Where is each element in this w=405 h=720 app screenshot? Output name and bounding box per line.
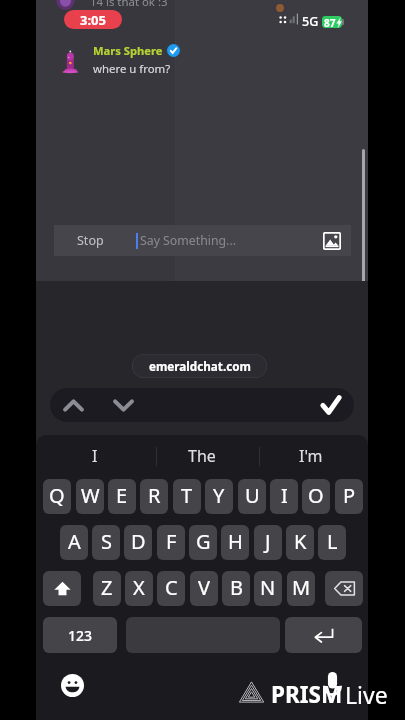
staticText: 14 is that ok :3 [90, 0, 168, 10]
button[interactable]: V [190, 571, 218, 606]
button[interactable]: Emoji [61, 674, 84, 697]
button[interactable]: C [157, 571, 185, 606]
staticText: I [92, 445, 98, 467]
staticText: E [116, 482, 128, 509]
staticText: 3:05 [80, 11, 106, 29]
button[interactable]: R [140, 479, 168, 514]
button[interactable]: Q [43, 479, 71, 514]
button[interactable]: H [221, 525, 249, 560]
button[interactable]: Backspace [325, 571, 363, 606]
staticText: N [260, 574, 276, 601]
staticText: D [131, 528, 146, 555]
staticText: emeraldchat.com [149, 358, 251, 374]
staticText: O [308, 482, 324, 509]
staticText: Mars Sphere [93, 43, 163, 58]
staticText: I [281, 482, 288, 509]
button[interactable]: T [173, 479, 201, 514]
button[interactable]: B [222, 571, 250, 606]
staticText: 87 [324, 16, 336, 28]
button[interactable]: F [157, 525, 185, 560]
button[interactable]: A [60, 525, 88, 560]
button[interactable]: Send image [321, 230, 343, 252]
staticText: The [188, 445, 216, 467]
staticText: G [196, 528, 211, 555]
button[interactable]: Enter [285, 617, 362, 653]
button[interactable]: Next field [103, 388, 143, 422]
staticText: A [68, 528, 81, 555]
button[interactable]: Stop [54, 225, 351, 256]
button[interactable]: J [254, 525, 282, 560]
staticText: Stop [77, 232, 104, 249]
button[interactable]: emeraldchat.com [132, 354, 267, 378]
button[interactable]: E [108, 479, 136, 514]
button[interactable]: X [125, 571, 153, 606]
staticText: Q [49, 482, 65, 509]
button[interactable]: G [189, 525, 217, 560]
staticText: V [198, 574, 210, 601]
staticText: where u from? [93, 61, 171, 77]
button[interactable]: The [162, 435, 242, 478]
button[interactable]: I [270, 479, 298, 514]
button[interactable]: P [335, 479, 363, 514]
staticText: PRISM [271, 679, 343, 710]
staticText: M [292, 574, 311, 601]
button[interactable]: N [254, 571, 282, 606]
button[interactable]: Shift [43, 571, 81, 606]
staticText: B [230, 574, 243, 601]
button[interactable]: M [287, 571, 315, 606]
staticText: R [148, 482, 161, 509]
staticText: X [133, 574, 145, 601]
button[interactable]: Done [313, 388, 349, 422]
button[interactable]: L [318, 525, 346, 560]
button[interactable]: Previous field [53, 388, 93, 422]
button[interactable]: O [302, 479, 330, 514]
staticText: I'm [299, 445, 323, 467]
staticText: P [343, 482, 356, 509]
button[interactable]: Y [205, 479, 233, 514]
staticText: L [327, 528, 338, 555]
staticText: F [166, 528, 177, 555]
button[interactable]: S [92, 525, 120, 560]
button[interactable]: D [124, 525, 152, 560]
button[interactable]: K [286, 525, 314, 560]
button[interactable]: Z [93, 571, 121, 606]
staticText: Z [101, 574, 113, 601]
staticText: T [181, 482, 193, 509]
staticText: 5G [302, 13, 319, 30]
staticText: Live [345, 679, 388, 710]
button[interactable]: U [238, 479, 266, 514]
button[interactable]: I'm [271, 435, 351, 478]
staticText: K [294, 528, 307, 555]
button[interactable]: I [55, 435, 135, 478]
staticText: H [228, 528, 243, 555]
button[interactable]: W [76, 479, 104, 514]
staticText: U [245, 482, 260, 509]
staticText: W [81, 482, 100, 509]
staticText: 123 [68, 626, 93, 645]
button[interactable]: 3:05 [64, 10, 122, 29]
staticText: Y [213, 482, 225, 509]
staticText: S [101, 528, 112, 555]
staticText: Say Something... [140, 232, 237, 249]
staticText: C [165, 574, 178, 601]
staticText: J [265, 528, 271, 555]
button[interactable]: 123 [43, 617, 117, 653]
